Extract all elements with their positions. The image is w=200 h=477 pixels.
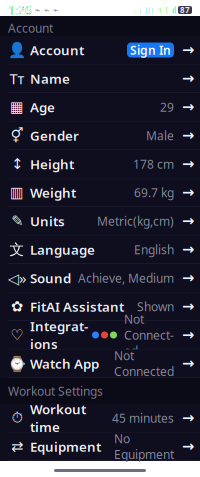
button[interactable]: ⌚	[0, 349, 200, 378]
staticText: ⌚	[8, 355, 26, 372]
button[interactable]: Sign In	[127, 42, 174, 57]
button[interactable]: ↕	[0, 150, 200, 178]
staticText: 文	[9, 240, 24, 258]
staticText: Male	[146, 127, 174, 143]
staticText: 👤	[8, 42, 26, 58]
staticText: 1:26	[8, 2, 32, 18]
staticText: Account	[30, 41, 84, 59]
staticText: Weight	[30, 184, 76, 201]
button[interactable]: ⇄	[0, 432, 200, 461]
staticText: Workout time	[30, 400, 86, 436]
staticText: ▦	[10, 99, 24, 115]
button[interactable]: ▦	[0, 93, 200, 121]
staticText: ◁»	[8, 268, 26, 288]
staticText: 87	[180, 5, 190, 15]
button[interactable]: ✎	[0, 207, 200, 235]
staticText: 29	[160, 99, 174, 115]
staticText: →	[182, 184, 194, 201]
staticText: 45 minutes	[112, 410, 174, 426]
button[interactable]: 文	[0, 235, 200, 264]
staticText: →	[182, 410, 194, 426]
staticText: →	[182, 70, 194, 87]
button[interactable]: ⚥	[0, 121, 200, 150]
button[interactable]: ▥	[0, 178, 200, 207]
button[interactable]: ⏱	[0, 404, 200, 432]
staticText: No Equipment	[114, 431, 174, 462]
staticText: Workout Settings	[8, 383, 103, 399]
staticText: 178 cm	[133, 156, 174, 172]
button[interactable]: ◁»	[0, 264, 200, 292]
staticText: Language	[30, 241, 95, 258]
staticText: Sound	[30, 269, 71, 287]
button[interactable]: Account	[30, 41, 84, 59]
staticText: →	[182, 241, 194, 258]
staticText: →	[182, 213, 194, 229]
staticText: ✿	[11, 298, 23, 315]
staticText: →	[182, 298, 194, 315]
staticText: ♡	[10, 327, 23, 343]
staticText: ⚥	[10, 127, 23, 144]
staticText: Tт	[9, 69, 24, 88]
staticText: →	[182, 42, 194, 58]
staticText: Watch App	[30, 355, 99, 372]
staticText: Metric(kg,cm)	[97, 213, 174, 229]
staticText: Shown	[137, 298, 174, 314]
staticText: Gender	[30, 127, 79, 144]
staticText: Achieve, Medium	[78, 270, 174, 286]
button[interactable]: ✿	[0, 292, 200, 321]
staticText: FitAI Assistant	[30, 298, 124, 315]
staticText: ⇄	[11, 438, 23, 455]
staticText: Equipment	[30, 438, 101, 455]
staticText: Account	[8, 20, 53, 36]
staticText: →	[182, 156, 194, 172]
staticText: ▭ ◧ ⌗ ⌶ ıl	[133, 4, 176, 16]
staticText: Not Connected	[114, 348, 174, 379]
button[interactable]: ♡	[0, 321, 200, 349]
staticText: 69.7 kg	[134, 184, 174, 200]
staticText: ⏱	[11, 411, 22, 425]
staticText: Height	[30, 155, 74, 173]
staticText: English	[134, 241, 174, 257]
staticText: →	[182, 438, 194, 455]
staticText: Integrations	[30, 317, 88, 353]
staticText: →	[182, 127, 194, 144]
staticText: →	[182, 270, 194, 286]
staticText: Name	[30, 70, 70, 87]
staticText: Sign In	[130, 42, 171, 58]
staticText: ▥	[10, 184, 24, 201]
staticText: →	[182, 355, 194, 372]
staticText: Not Connected	[124, 311, 174, 359]
staticText: Age	[30, 98, 55, 116]
staticText: ✎	[11, 213, 23, 229]
button[interactable]: Tт	[0, 64, 200, 93]
staticText: Units	[30, 212, 65, 230]
staticText: ↕	[11, 156, 23, 172]
staticText: →	[182, 99, 194, 115]
button[interactable]: Account details	[180, 42, 196, 58]
staticText: ⌁ ⌁ ⌁	[35, 5, 59, 15]
staticText: →	[182, 327, 194, 343]
